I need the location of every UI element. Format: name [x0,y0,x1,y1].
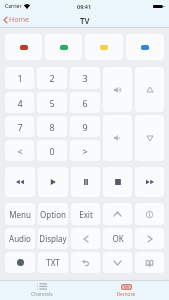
button[interactable]: Info [135,203,164,225]
button[interactable]: < [5,140,34,161]
button[interactable]: Channels [0,281,84,300]
button[interactable]: 8 [37,116,67,137]
button[interactable]: Menu [5,203,35,225]
staticText: 7 [17,121,23,133]
button[interactable]: Blue [126,34,164,60]
staticText: 9 [82,121,88,133]
staticText: 2 [49,72,55,84]
button[interactable]: 0 [37,140,67,161]
button[interactable]: 1 [5,67,34,89]
button[interactable]: Pause [71,167,100,197]
staticText: Menu [9,209,31,220]
button[interactable]: Volume down [103,115,132,161]
button[interactable]: Display [38,228,68,249]
button[interactable]: Up [103,203,132,225]
button[interactable]: Back [71,252,100,273]
button[interactable]: Home [0,13,33,27]
button[interactable]: Exit [71,203,100,225]
staticText: Option [40,209,66,220]
button[interactable]: 3 [70,67,100,89]
button[interactable]: TXT [38,252,68,273]
button[interactable]: > [70,140,100,161]
button[interactable]: Option [38,203,68,225]
button[interactable]: Guide [135,252,164,273]
staticText: 0 [49,145,55,157]
staticText: Exit [79,209,93,220]
button[interactable]: Channel up [135,67,164,112]
button[interactable]: Left [71,228,100,249]
button[interactable]: 2 [37,67,67,89]
staticText: TV [80,15,90,26]
staticText: Carrier [5,3,22,10]
button[interactable]: 5 [37,92,67,113]
button[interactable]: Red [5,34,42,60]
staticText: > [82,145,88,157]
button[interactable]: Record [5,252,35,273]
button[interactable]: Channel down [135,115,164,161]
button[interactable]: Play [38,167,68,197]
button[interactable]: 4 [5,92,34,113]
staticText: Display [39,233,67,244]
button[interactable]: Green [45,34,82,60]
staticText: Audio [9,233,31,244]
staticText: 1 [17,72,23,84]
button[interactable]: 6 [70,92,100,113]
button[interactable]: Audio [5,228,35,249]
staticText: 5 [49,97,55,109]
staticText: < [17,145,23,157]
button[interactable]: Right [135,228,164,249]
button[interactable]: 7 [5,116,34,137]
button[interactable]: OK [103,228,132,249]
staticText: 4 [17,97,23,109]
staticText: 09:41 [77,3,92,10]
staticText: 8 [49,121,55,133]
staticText: Channels [31,291,53,298]
staticText: TXT [46,257,60,268]
staticText: 6 [82,97,88,109]
button[interactable]: Yellow [85,34,123,60]
button[interactable]: Remote [84,281,169,300]
button[interactable]: Down [103,252,132,273]
staticText: Remote [117,291,136,298]
staticText: 3 [82,72,88,84]
button[interactable]: Fast forward [135,167,164,197]
button[interactable]: Volume up [103,67,132,112]
button[interactable]: 9 [70,116,100,137]
button[interactable]: Stop [103,167,132,197]
staticText: Home [9,15,29,25]
staticText: OK [112,233,124,244]
button[interactable]: Rewind [5,167,35,197]
